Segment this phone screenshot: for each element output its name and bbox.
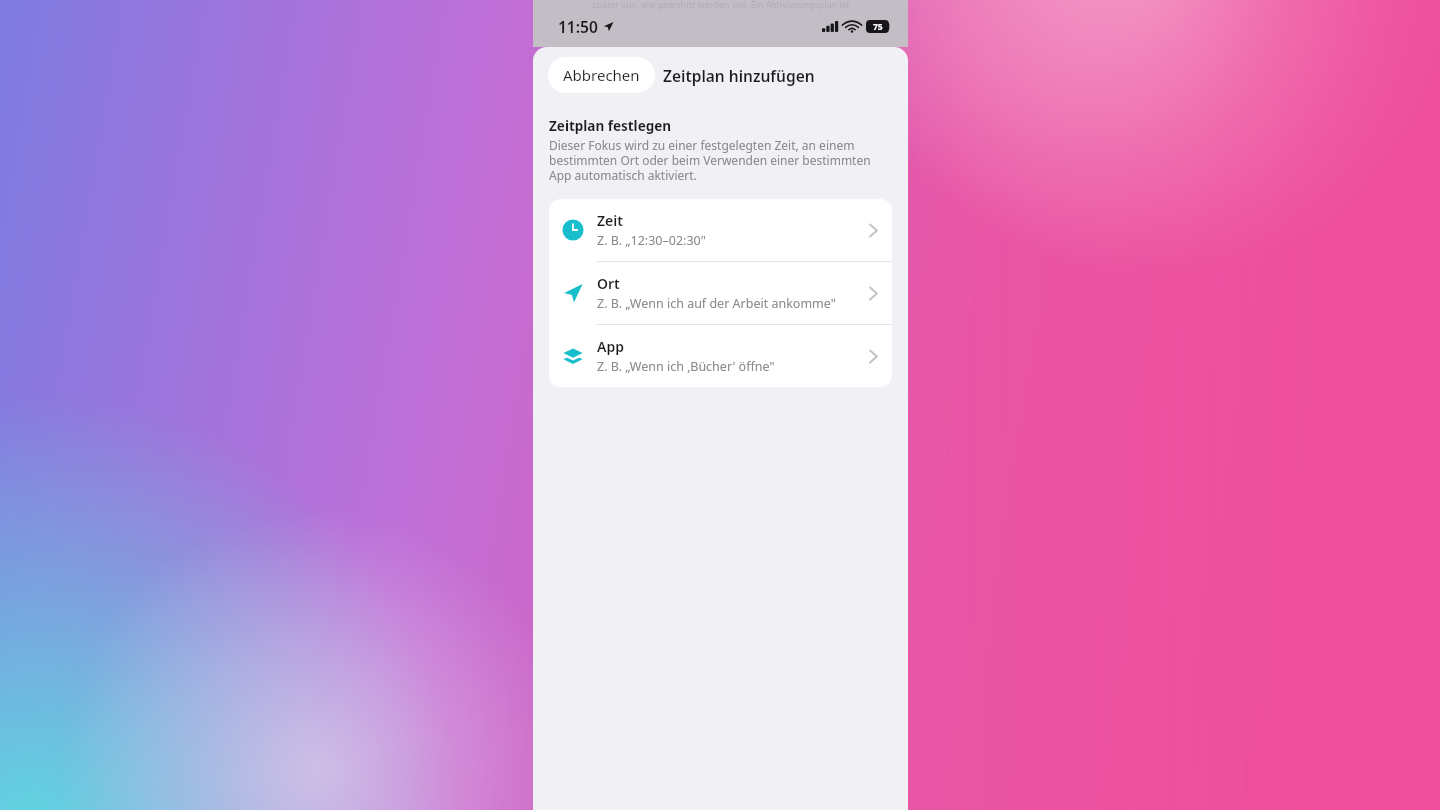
staticText: Abbrechen: [563, 65, 640, 85]
staticText: Z. B. „12:30–02:30": [597, 232, 706, 249]
staticText: App: [597, 337, 624, 356]
button[interactable]: App: [549, 325, 892, 387]
staticText: Ort: [597, 274, 620, 293]
staticText: 75: [873, 21, 883, 33]
button[interactable]: Zeit: [549, 199, 892, 261]
button[interactable]: Ort: [549, 262, 892, 324]
staticText: Zeitplan festlegen: [549, 117, 672, 135]
staticText: später aus, wie gewohnt werden soll. Ein…: [592, 0, 850, 10]
staticText: Zeitplan hinzufügen: [663, 65, 815, 86]
staticText: Dieser Fokus wird zu einer festgelegten …: [549, 137, 892, 183]
staticText: Z. B. „Wenn ich ‚Bücher' öffne": [597, 358, 775, 375]
staticText: Z. B. „Wenn ich auf der Arbeit ankomme": [597, 295, 836, 312]
staticText: Zeit: [597, 211, 623, 230]
staticText: 11:50: [558, 16, 598, 37]
button[interactable]: Abbrechen: [548, 57, 655, 93]
